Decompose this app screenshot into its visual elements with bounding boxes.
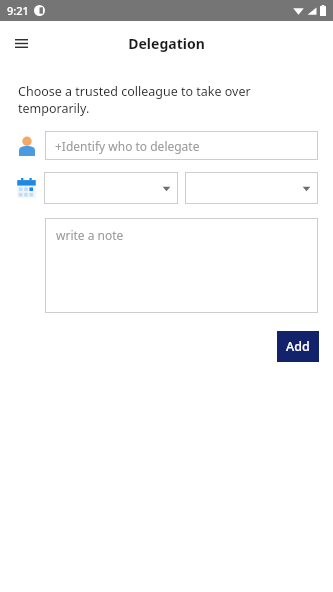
staticText: Delegation [0, 34, 333, 53]
button[interactable]: Select date [44, 172, 178, 204]
button[interactable]: write a note [45, 218, 318, 313]
other: Calendar [16, 178, 37, 199]
staticText: 9:21 [7, 3, 29, 18]
button[interactable]: +Identify who to delegate [45, 131, 318, 160]
button[interactable]: Add [277, 331, 319, 362]
button[interactable]: Select date [185, 172, 318, 204]
other: Person [17, 136, 37, 156]
button[interactable]: Open navigation menu [8, 30, 34, 56]
staticText: write a note [56, 227, 124, 243]
staticText: Choose a trusted colleague to take over … [18, 83, 321, 117]
staticText: +Identify who to delegate [55, 138, 200, 154]
staticText: Add [286, 338, 310, 355]
